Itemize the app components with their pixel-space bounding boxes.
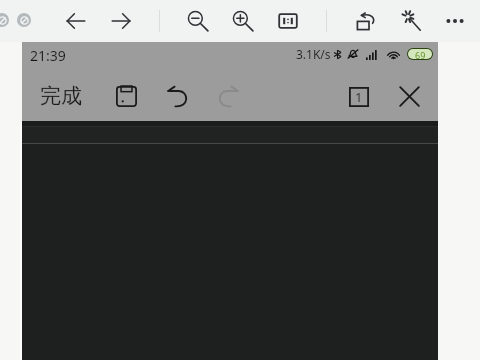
staticText: 完成 [40, 83, 82, 109]
button[interactable]: Enhance [398, 8, 424, 34]
button[interactable]: 完成 [40, 83, 82, 109]
staticText: 21:39 [30, 46, 66, 65]
staticText: 69 [415, 49, 426, 59]
button[interactable]: Forward [108, 8, 134, 34]
button[interactable]: Save [110, 81, 142, 111]
button[interactable]: More options [442, 8, 468, 34]
button[interactable]: Undo [161, 81, 193, 111]
button[interactable]: Zoom in [230, 8, 256, 34]
button[interactable]: Redo [212, 81, 244, 111]
button[interactable]: Actual size [275, 8, 301, 34]
button[interactable]: Back [63, 8, 89, 34]
button[interactable]: Zoom out [185, 8, 211, 34]
staticText: 1 [355, 88, 363, 106]
button[interactable]: Rotate [353, 8, 379, 34]
button[interactable]: Pages [342, 81, 374, 111]
staticText: 3.1K/s [296, 46, 331, 62]
button[interactable]: Close [393, 81, 425, 111]
button[interactable]: Close [0, 13, 9, 27]
button[interactable]: Info [17, 13, 31, 27]
